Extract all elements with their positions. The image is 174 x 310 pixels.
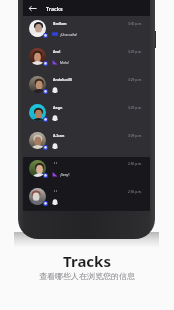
staticText: Aagn [53,105,63,110]
staticText: A.Ican [53,133,65,138]
button[interactable]: 2:56 p.m. [23,156,150,184]
staticText: ¡Sexy! [60,172,70,177]
staticText: Bedlam [53,21,67,26]
button[interactable]: A.Ican [23,128,150,156]
button[interactable]: Back [27,3,38,14]
staticText: 2:56 p.m. [128,162,142,166]
staticText: Aral [53,49,61,54]
staticText: 3:29 p.m. [128,50,142,54]
button[interactable]: Aagn [23,100,150,128]
button[interactable]: Bedlam [23,16,150,44]
staticText: 3:29 p.m. [128,78,142,82]
staticText: 3:29 p.m. [128,106,142,110]
button[interactable]: Andalux30 [23,72,150,100]
staticText: Melo! [60,60,70,65]
staticText: 2:56 p.m. [128,190,142,194]
staticText: Tracks [46,5,63,12]
button[interactable]: 2:56 p.m. [23,184,150,212]
staticText: 3:30 p.m. [128,22,142,26]
staticText: 3:09 p.m. [128,134,142,138]
staticText: ¡Una caña! [60,32,78,37]
staticText: 查看哪些人在浏览您的信息 [39,271,135,281]
staticText: Tracks [63,251,111,271]
button[interactable]: Aral [23,44,150,72]
staticText: Andalux30 [53,77,72,82]
